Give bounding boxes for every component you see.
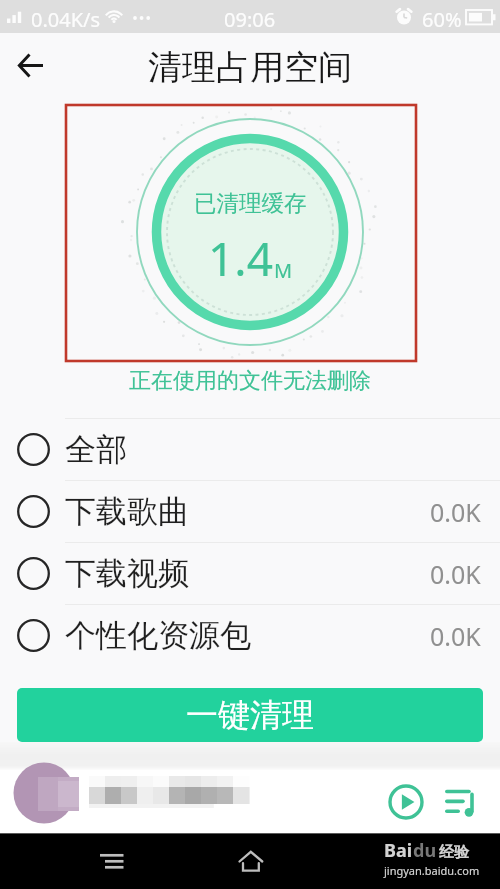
button[interactable]: 个性化资源包 [0,604,500,666]
button[interactable]: 一键清理 [17,688,483,742]
button[interactable]: Menu [88,837,136,885]
button[interactable]: Home [227,837,275,885]
staticText: 个性化资源包 [65,616,251,655]
staticText: du [413,838,437,863]
staticText: 清理占用空间 [148,46,352,89]
staticText: M [274,257,293,284]
staticText: 一键清理 [186,695,314,735]
staticText: 已清理缓存 [194,189,307,217]
button[interactable]: 下载视频 [0,542,500,604]
staticText: 经验 [439,843,469,862]
staticText: 下载歌曲 [65,492,189,531]
button[interactable]: 全部 [0,418,500,480]
staticText: 60% [422,6,462,33]
button[interactable]: Now playing [0,770,370,833]
button[interactable]: Back [6,44,54,92]
staticText: Bai [384,838,413,863]
button[interactable]: 下载歌曲 [0,480,500,542]
staticText: 0.0K [430,495,481,529]
staticText: 正在使用的文件无法删除 [129,367,371,395]
staticText: 下载视频 [65,554,189,593]
staticText: 09:06 [224,6,276,33]
staticText: 0.0K [430,557,481,591]
staticText: 0.04K/s [31,6,101,33]
staticText: jingyan.baidu.com [384,863,480,878]
button[interactable]: Playlist [438,780,482,824]
staticText: 1.4 [208,227,273,290]
button[interactable]: Play [384,780,428,824]
staticText: 0.0K [430,619,481,653]
staticText: 全部 [65,430,127,469]
